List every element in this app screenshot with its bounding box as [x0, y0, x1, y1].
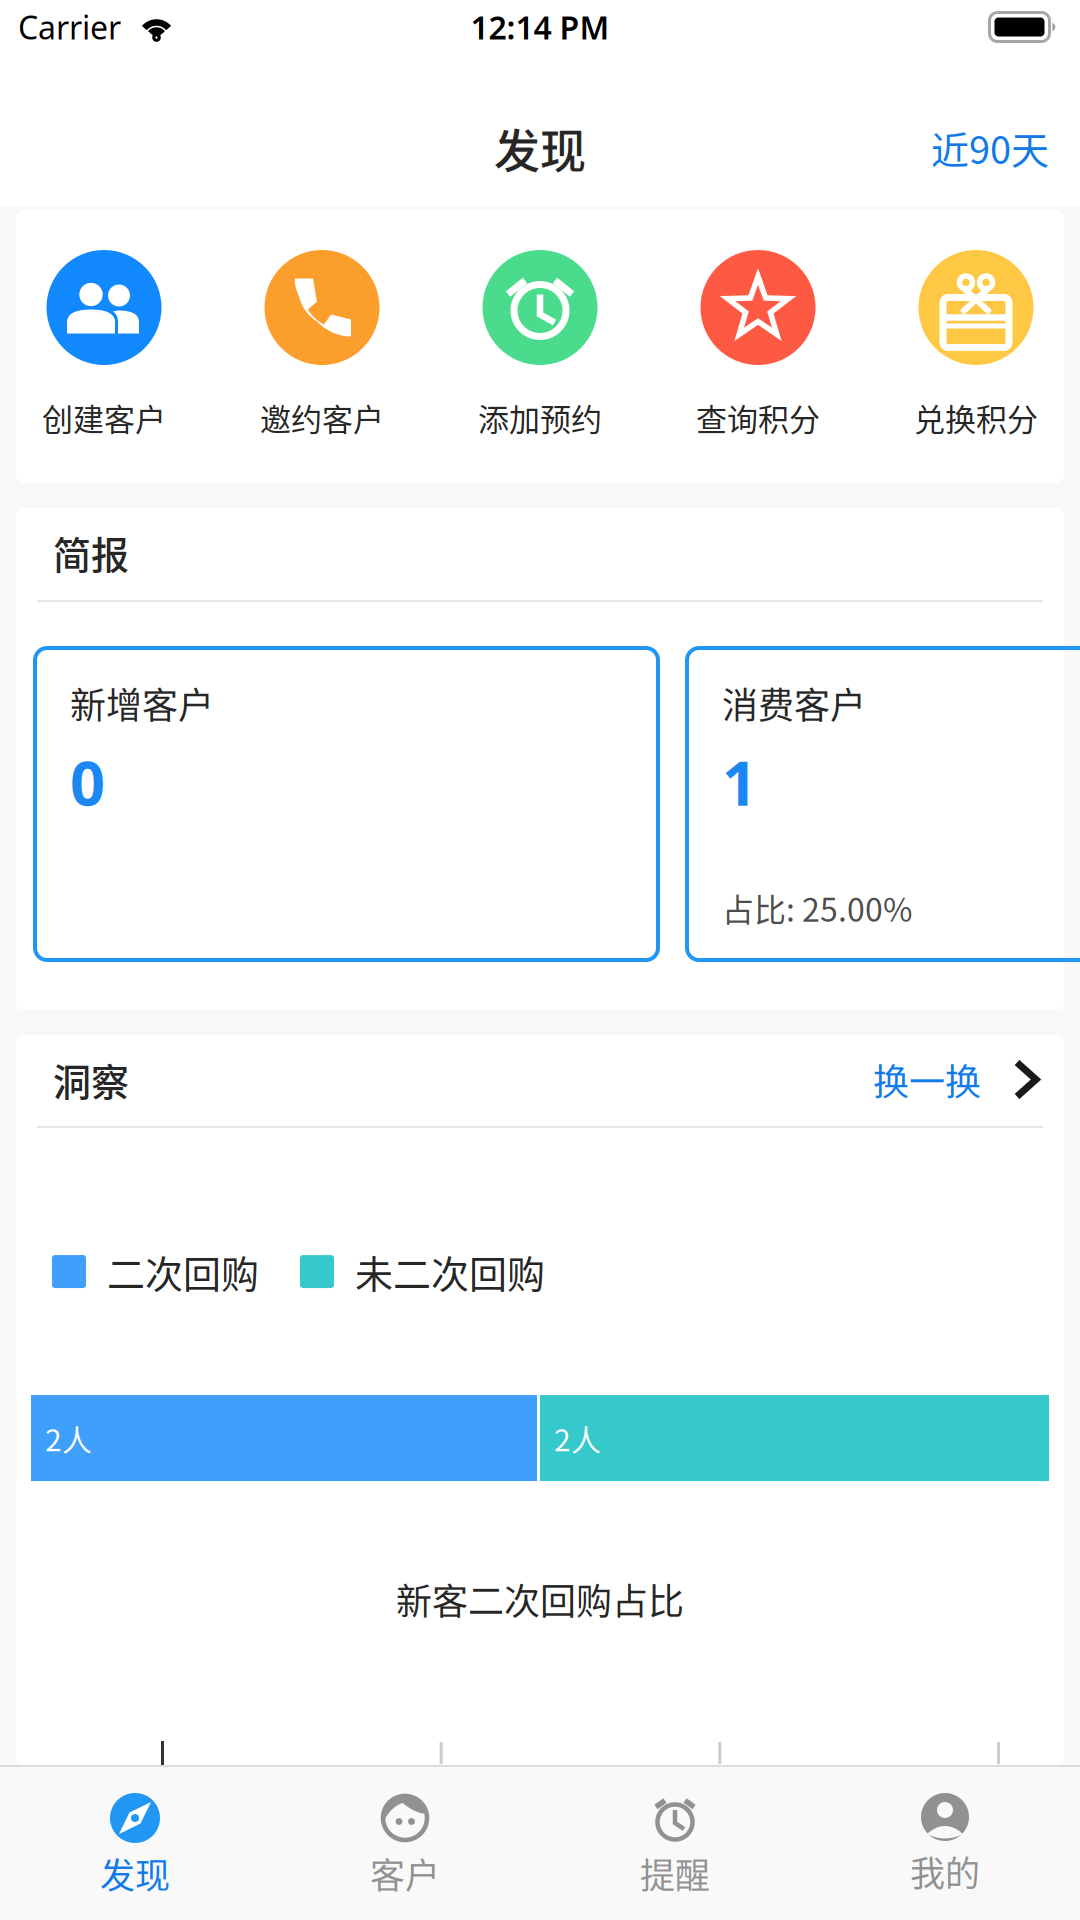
button[interactable]: 兑换积分 [867, 250, 1080, 440]
staticText: 我的 [910, 1846, 980, 1897]
staticText: 添加预约 [478, 395, 602, 440]
staticText: 12:14 PM [470, 6, 609, 48]
staticText: 2人 [45, 1416, 92, 1460]
staticText: 消费客户 [722, 677, 866, 729]
staticText: 邀约客户 [260, 395, 384, 440]
staticText: 未二次回购 [355, 1244, 545, 1299]
button[interactable]: 提醒 [540, 1765, 810, 1920]
staticText: 创建客户 [42, 395, 166, 440]
staticText: 新客二次回购占比 [396, 1573, 684, 1625]
button[interactable]: 邀约客户 [213, 250, 431, 440]
staticText: Carrier [18, 6, 121, 48]
staticText: 近90天 [931, 120, 1049, 175]
button[interactable]: 客户 [270, 1765, 540, 1920]
staticText: 兑换积分 [914, 395, 1038, 440]
staticText: 客户 [370, 1848, 440, 1899]
staticText: 提醒 [640, 1848, 710, 1899]
button[interactable]: 发现 [0, 1765, 270, 1920]
button[interactable]: 查询积分 [649, 250, 867, 440]
staticText: 发现 [100, 1848, 170, 1899]
staticText: 2人 [554, 1416, 601, 1460]
staticText: 简报 [53, 525, 129, 580]
staticText: 新增客户 [70, 677, 214, 729]
staticText: 0 [70, 741, 105, 823]
staticText: 1 [722, 741, 757, 823]
button[interactable]: 添加预约 [431, 250, 649, 440]
button[interactable]: 我的 [810, 1765, 1080, 1920]
staticText: 换一换 [873, 1053, 981, 1105]
button[interactable]: 换一换 [873, 1053, 1041, 1105]
staticText: 二次回购 [107, 1244, 259, 1299]
staticText: 发现 [494, 114, 586, 181]
button[interactable]: 创建客户 [0, 250, 213, 440]
staticText: 查询积分 [696, 395, 820, 440]
button[interactable]: 近90天 [931, 108, 1049, 187]
staticText: 占比: 25.00% [722, 885, 912, 931]
staticText: 洞察 [53, 1052, 129, 1107]
